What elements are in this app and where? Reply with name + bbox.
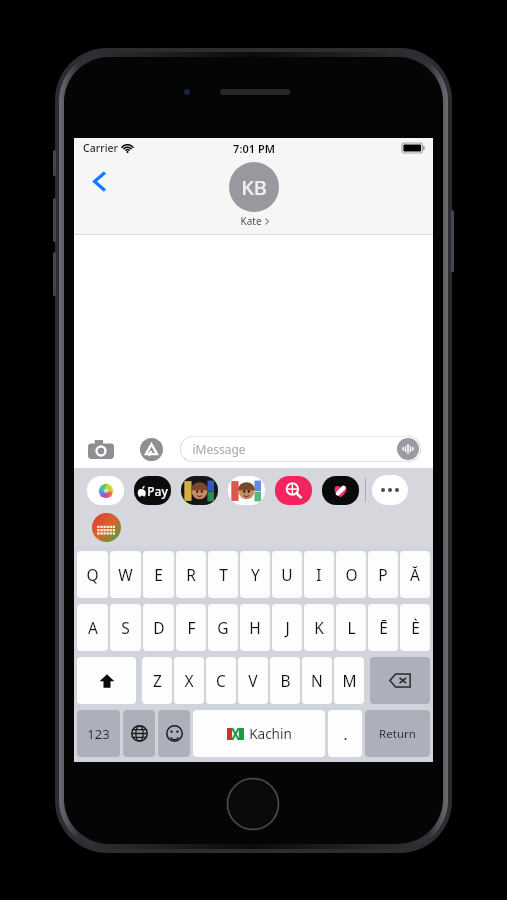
staticText: L (347, 617, 356, 638)
button[interactable]: E (143, 551, 174, 598)
staticText: I (316, 564, 322, 585)
button[interactable]: U (272, 551, 302, 598)
staticText: 123 (87, 725, 110, 743)
staticText: Y (251, 564, 260, 585)
button[interactable]: N (302, 657, 332, 704)
button[interactable]: Ē (368, 604, 398, 651)
button[interactable]: M (334, 657, 364, 704)
button[interactable]: Period (328, 710, 362, 757)
button[interactable]: Numbers (77, 710, 120, 757)
button[interactable]: Y (240, 551, 270, 598)
staticText: V (248, 670, 258, 691)
button[interactable]: Memoji (180, 474, 218, 506)
button[interactable]: H (240, 604, 270, 651)
staticText: A (88, 617, 98, 638)
staticText: O (345, 564, 358, 585)
button[interactable]: L (336, 604, 366, 651)
staticText: Carrier (83, 141, 118, 155)
staticText: KB (241, 174, 267, 201)
button[interactable]: Ă (400, 551, 430, 598)
button[interactable]: F (176, 604, 206, 651)
staticText: F (187, 617, 196, 638)
staticText: N (311, 670, 323, 691)
button[interactable]: Backspace (370, 657, 430, 704)
staticText: P (378, 564, 388, 585)
button[interactable]: B (270, 657, 300, 704)
staticText: T (219, 564, 228, 585)
button[interactable]: Apple Pay (133, 474, 171, 506)
button[interactable]: T (208, 551, 238, 598)
staticText: Return (379, 726, 416, 742)
button[interactable]: G (208, 604, 238, 651)
button[interactable]: K (304, 604, 334, 651)
staticText: B (280, 670, 291, 691)
button[interactable]: È (400, 604, 430, 651)
button[interactable]: W (110, 551, 141, 598)
button[interactable]: iMessage (180, 436, 421, 462)
staticText: Pay (147, 483, 168, 499)
staticText: S (121, 617, 130, 638)
staticText: E (154, 564, 163, 585)
button[interactable]: Images (274, 474, 312, 506)
button[interactable]: Q (77, 551, 108, 598)
button[interactable]: I (304, 551, 334, 598)
button[interactable]: Shift (77, 657, 136, 704)
button[interactable]: J (272, 604, 302, 651)
button[interactable]: Keyboard app (86, 512, 126, 542)
button[interactable]: D (143, 604, 174, 651)
staticText: Z (153, 670, 162, 691)
staticText: È (411, 617, 420, 638)
staticText: 7:01 PM (233, 141, 275, 156)
staticText: Ă (410, 564, 420, 585)
staticText: G (217, 617, 229, 638)
staticText: R (186, 564, 196, 585)
button[interactable]: Z (142, 657, 172, 704)
staticText: U (281, 564, 293, 585)
button[interactable]: A (77, 604, 108, 651)
button[interactable]: O (336, 551, 366, 598)
staticText: . (343, 724, 348, 744)
staticText: Q (86, 564, 99, 585)
button[interactable]: Music (321, 474, 359, 506)
staticText: W (118, 564, 133, 585)
button[interactable]: V (238, 657, 268, 704)
staticText: M (342, 670, 357, 691)
staticText: Kachin (249, 725, 292, 743)
button[interactable]: X (174, 657, 204, 704)
button[interactable]: Emoji (158, 710, 190, 757)
staticText: Ē (379, 617, 388, 638)
button[interactable]: Space (193, 710, 325, 757)
button[interactable]: R (176, 551, 206, 598)
staticText: J (285, 617, 290, 638)
staticText: D (153, 617, 165, 638)
staticText: C (216, 670, 226, 691)
button[interactable]: Memoji stickers (227, 474, 265, 506)
staticText: K (314, 617, 324, 638)
button[interactable]: C (206, 657, 236, 704)
button[interactable]: Photos (86, 474, 124, 506)
button[interactable]: Next keyboard (123, 710, 155, 757)
button[interactable]: Back (82, 164, 116, 198)
staticText: Kate (240, 214, 262, 228)
button[interactable]: Record audio message (397, 438, 419, 460)
button[interactable]: App Store (136, 434, 166, 464)
button[interactable]: More apps (372, 475, 408, 505)
button[interactable]: S (110, 604, 141, 651)
staticText: H (249, 617, 261, 638)
button[interactable]: KB (229, 162, 279, 228)
staticText: X (184, 670, 194, 691)
staticText: iMessage (192, 441, 246, 457)
button[interactable]: Return (365, 710, 430, 757)
button[interactable]: Camera (86, 434, 116, 464)
button[interactable]: P (368, 551, 398, 598)
